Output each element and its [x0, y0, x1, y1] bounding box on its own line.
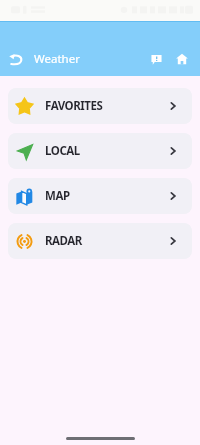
staticText: FAVORITES: [45, 98, 103, 114]
button[interactable]: Home: [170, 47, 194, 71]
staticText: LOCAL: [45, 143, 80, 159]
staticText: Weather: [34, 51, 80, 67]
button[interactable]: Feedback: [144, 47, 168, 71]
button[interactable]: FAVORITES: [8, 88, 192, 124]
button[interactable]: Back: [2, 45, 30, 73]
button[interactable]: RADAR: [8, 223, 192, 259]
button[interactable]: LOCAL: [8, 133, 192, 169]
staticText: RADAR: [45, 233, 82, 249]
staticText: MAP: [45, 188, 70, 204]
button[interactable]: MAP: [8, 178, 192, 214]
